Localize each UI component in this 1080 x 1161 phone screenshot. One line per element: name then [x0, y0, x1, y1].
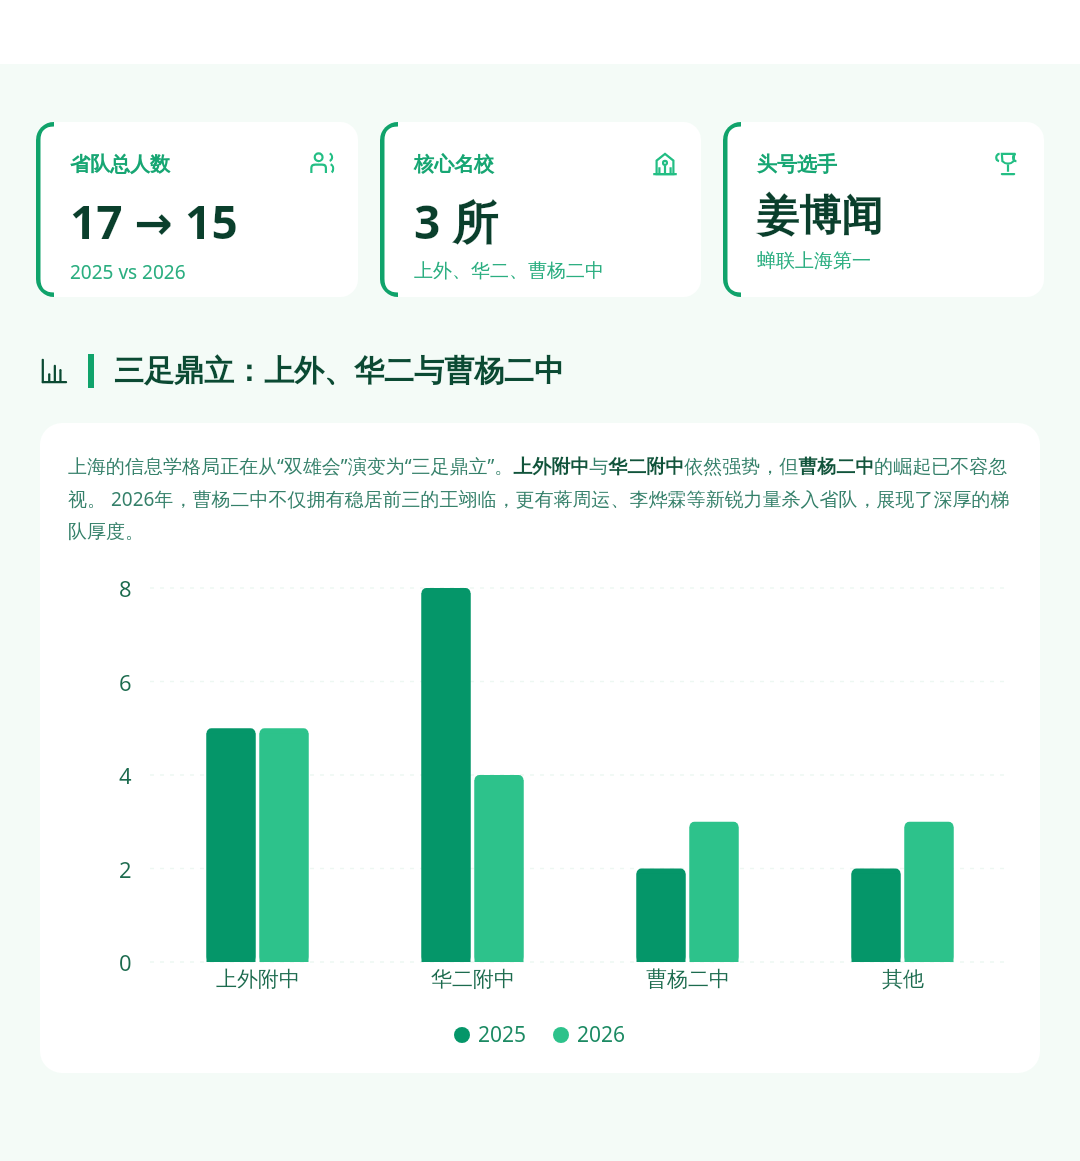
- staticText: 3 所: [414, 190, 499, 253]
- staticText: 其他: [882, 966, 924, 992]
- staticText: 2026: [577, 1020, 626, 1049]
- staticText: 2025: [478, 1020, 527, 1049]
- button[interactable]: 省队总人数: [36, 122, 358, 297]
- staticText: 蝉联上海第一: [757, 249, 871, 273]
- staticText: 4: [119, 760, 132, 790]
- staticText: 上海的信息学格局正在从“双雄会”演变为“三足鼎立”。上外附中与华二附中依然强势，…: [68, 453, 1012, 544]
- button[interactable]: 2026: [553, 1020, 626, 1049]
- staticText: 华二附中: [431, 966, 515, 992]
- staticText: 曹杨二中: [646, 966, 730, 992]
- staticText: 核心名校: [414, 152, 651, 177]
- staticText: 省队总人数: [70, 152, 308, 177]
- staticText: 头号选手: [757, 152, 994, 177]
- staticText: 17 → 15: [70, 190, 238, 253]
- staticText: 上外、华二、曹杨二中: [414, 259, 604, 283]
- other: People: [308, 150, 336, 178]
- staticText: 6: [119, 667, 132, 697]
- button[interactable]: 核心名校: [380, 122, 701, 297]
- staticText: 上外附中: [216, 966, 300, 992]
- other: Trophy: [994, 150, 1022, 178]
- staticText: 0: [119, 947, 132, 977]
- button[interactable]: 头号选手: [723, 122, 1044, 297]
- staticText: 8: [119, 573, 132, 603]
- button[interactable]: 2025: [454, 1020, 527, 1049]
- staticText: 三足鼎立：上外、华二与曹杨二中: [114, 352, 564, 390]
- staticText: 姜博闻: [757, 190, 883, 243]
- staticText: 2: [119, 854, 132, 884]
- staticText: 2025 vs 2026: [70, 259, 186, 285]
- other: School: [651, 150, 679, 178]
